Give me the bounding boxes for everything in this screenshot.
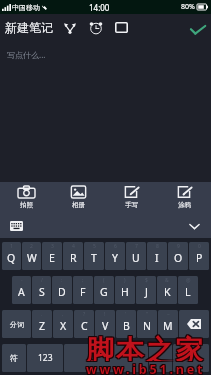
- staticText: !: [104, 311, 106, 318]
- staticText: N: [143, 319, 151, 333]
- staticText: 脚本之家: [86, 333, 206, 361]
- staticText: www.jb51.net: [86, 361, 206, 374]
- button[interactable]: Split view: [59, 17, 80, 38]
- button[interactable]: 新建笔记: [5, 20, 53, 35]
- button[interactable]: 分词: [2, 310, 31, 338]
- staticText: V: [102, 319, 109, 333]
- staticText: $: [145, 277, 148, 284]
- button[interactable]: $: [136, 276, 156, 304]
- staticText: E: [49, 251, 55, 265]
- staticText: O: [174, 251, 183, 265]
- staticText: 4: [72, 243, 75, 250]
- button[interactable]: /: [32, 276, 51, 304]
- button[interactable]: 0: [189, 242, 209, 270]
- button[interactable]: Done: [186, 18, 210, 42]
- button[interactable]: :: [52, 276, 72, 304]
- button[interactable]: 2: [22, 242, 41, 270]
- button[interactable]: [173, 344, 209, 372]
- staticText: K: [164, 285, 171, 299]
- staticText: www.jb51.net: [86, 360, 206, 373]
- button[interactable]: 。: [149, 344, 172, 372]
- staticText: Q: [7, 251, 16, 265]
- button[interactable]: 拍照: [0, 182, 52, 213]
- staticText: P: [196, 251, 203, 265]
- staticText: U: [132, 251, 140, 265]
- staticText: B: [123, 319, 130, 333]
- staticText: F: [80, 285, 86, 299]
- staticText: 脚本之家: [87, 333, 207, 361]
- staticText: 。: [157, 353, 165, 363]
- button[interactable]: [64, 344, 148, 372]
- staticText: H: [121, 285, 129, 299]
- button[interactable]: &: [157, 276, 177, 304]
- staticText: ;: [82, 277, 84, 284]
- button[interactable]: 相册: [52, 182, 105, 213]
- staticText: ?: [83, 311, 86, 318]
- staticText: @: [186, 277, 191, 284]
- button[interactable]: 符: [2, 344, 26, 372]
- staticText: 123: [38, 352, 53, 364]
- button[interactable]: 4: [63, 242, 83, 270]
- button[interactable]: ~: [158, 310, 178, 338]
- button[interactable]: Checklist: [111, 17, 132, 38]
- button[interactable]: 3: [42, 242, 62, 270]
- staticText: 脚本之家: [87, 334, 207, 362]
- button[interactable]: ": [137, 310, 157, 338]
- staticText: www.jb51.net: [85, 360, 205, 373]
- staticText: M: [163, 319, 173, 333]
- button[interactable]: Backspace: [179, 310, 209, 338]
- button[interactable]: 9: [168, 242, 188, 270]
- staticText: 6: [114, 243, 117, 250]
- staticText: 脚本之家: [86, 334, 206, 362]
- staticText: www.jb51.net: [85, 362, 205, 375]
- staticText: A: [18, 285, 25, 299]
- staticText: 5: [93, 243, 96, 250]
- staticText: 手写: [125, 201, 138, 209]
- staticText: S: [39, 285, 45, 299]
- staticText: 7: [135, 243, 138, 250]
- staticText: www.jb51.net: [87, 360, 207, 373]
- button[interactable]: Reminder: [85, 17, 106, 38]
- staticText: www.jb51.net: [87, 361, 207, 374]
- staticText: I: [155, 251, 159, 265]
- button[interactable]: 5: [84, 242, 104, 270]
- button[interactable]: ?: [74, 310, 94, 338]
- staticText: 8: [156, 243, 159, 250]
- staticText: 涂鸦: [178, 201, 191, 209]
- button[interactable]: 7: [126, 242, 146, 270]
- button[interactable]: ;: [73, 276, 93, 304]
- staticText: 脚本之家: [85, 334, 205, 362]
- staticText: 3: [51, 243, 54, 250]
- staticText: 脚本之家: [85, 332, 205, 360]
- staticText: 脚本之家: [85, 333, 205, 361]
- staticText: R: [70, 251, 77, 265]
- button[interactable]: 123: [27, 344, 63, 372]
- button[interactable]: Hide keyboard: [186, 218, 202, 234]
- staticText: Z: [39, 319, 46, 333]
- button[interactable]: .: [32, 310, 52, 338]
- button[interactable]: 涂鸦: [158, 182, 211, 213]
- button[interactable]: 8: [147, 242, 167, 270]
- button[interactable]: Keyboard: [10, 221, 23, 231]
- staticText: ): [124, 277, 126, 284]
- button[interactable]: 手写: [105, 182, 158, 213]
- button[interactable]: ': [116, 310, 136, 338]
- staticText: Y: [112, 251, 118, 265]
- button[interactable]: !: [95, 310, 115, 338]
- staticText: www.jb51.net: [87, 362, 207, 375]
- button[interactable]: ): [115, 276, 135, 304]
- button[interactable]: @: [178, 276, 198, 304]
- button[interactable]: ,: [53, 310, 73, 338]
- button[interactable]: 6: [105, 242, 125, 270]
- button[interactable]: -: [12, 276, 31, 304]
- staticText: D: [58, 285, 66, 299]
- button[interactable]: (: [94, 276, 114, 304]
- staticText: W: [27, 251, 37, 265]
- staticText: &: [165, 277, 169, 284]
- button[interactable]: 1: [2, 242, 21, 270]
